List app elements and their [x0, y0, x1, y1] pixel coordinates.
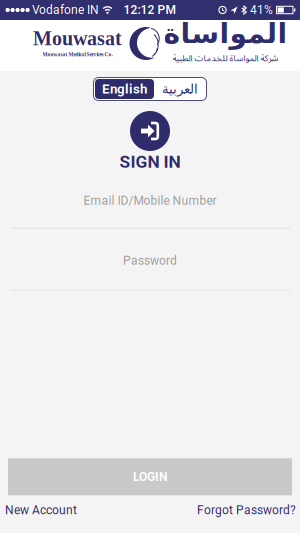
staticText: العربية: [161, 81, 197, 96]
staticText: Email ID/Mobile Number: [83, 194, 216, 207]
button[interactable]: Password: [0, 254, 300, 291]
button[interactable]: English: [95, 79, 154, 99]
button[interactable]: New Account: [5, 503, 77, 517]
staticText: Vodafone IN: [32, 3, 99, 17]
button[interactable]: العربية: [154, 79, 205, 99]
button[interactable]: Forgot Password?: [197, 503, 296, 517]
staticText: Mouwasat: [33, 27, 122, 50]
staticText: LOGIN: [133, 470, 167, 484]
staticText: 12:12 PM: [123, 3, 176, 17]
staticText: Forgot Password?: [197, 503, 296, 517]
staticText: 41%: [250, 3, 273, 17]
button[interactable]: Sign In: [130, 111, 170, 151]
button[interactable]: Email ID/Mobile Number: [0, 194, 300, 229]
staticText: New Account: [5, 503, 77, 517]
staticText: Password: [123, 254, 177, 267]
staticText: المواساة: [163, 17, 287, 49]
staticText: English: [102, 81, 147, 97]
staticText: SIGN IN: [119, 152, 180, 172]
staticText: شركة المواساة للخدمات الطبية: [172, 49, 278, 67]
button[interactable]: LOGIN: [8, 458, 292, 495]
staticText: Mouwasat Medical Services Co.: [42, 52, 112, 57]
